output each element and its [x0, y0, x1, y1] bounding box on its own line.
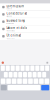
- staticText: Lorem ipsum: [6, 4, 23, 8]
- button[interactable]: Consectetur ad: [0, 11, 50, 18]
- staticText: Consectetur ad: [6, 12, 27, 15]
- button[interactable]: Labore et dolo: [0, 25, 50, 33]
- staticText: minim veniam: [6, 37, 14, 39]
- button[interactable]: Eiusmod temp: [0, 18, 50, 25]
- staticText: dolor sit: [6, 8, 11, 10]
- staticText: Ut enim ad: [6, 34, 21, 37]
- staticText: Eiusmod temp: [6, 19, 25, 22]
- staticText: magna aliqua: [6, 30, 15, 32]
- staticText: incididunt ut: [6, 23, 13, 24]
- staticText: elit sed do: [6, 15, 12, 17]
- staticText: Labore et dolo: [6, 26, 27, 30]
- button[interactable]: Ut enim ad: [0, 33, 50, 40]
- button[interactable]: Lorem ipsum: [0, 4, 50, 11]
